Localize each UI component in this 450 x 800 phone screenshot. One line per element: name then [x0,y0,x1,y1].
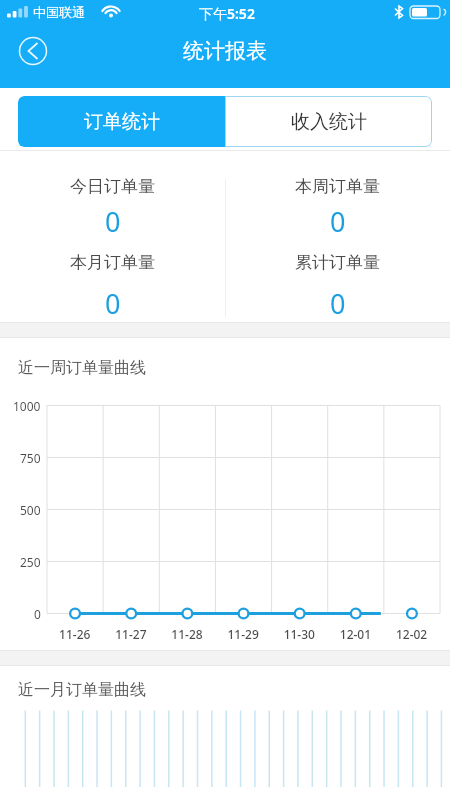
button[interactable]: 订单统计 [18,96,225,147]
button[interactable] [15,33,51,69]
staticText: 0 [330,285,346,322]
staticText: 近一月订单量曲线 [18,680,146,700]
staticText: 本周订单量 [295,176,380,197]
staticText: 累计订单量 [295,252,380,273]
staticText: 中国联通 [33,4,85,20]
button[interactable]: 收入统计 [225,96,432,147]
staticText: 本月订单量 [70,252,155,273]
button[interactable]: 今日订单量 [0,151,225,236]
staticText: 0 [105,285,121,322]
staticText: 下午5:52 [199,4,255,23]
button[interactable]: 累计订单量 [225,236,450,322]
staticText: 近一周订单量曲线 [18,358,146,378]
button[interactable]: 本周订单量 [225,151,450,236]
staticText: 今日订单量 [70,176,155,197]
staticText: 收入统计 [291,110,367,134]
staticText: 统计报表 [183,38,267,64]
staticText: 0 [105,203,121,236]
staticText: 0 [330,203,346,236]
staticText: 订单统计 [84,110,160,134]
button[interactable]: 本月订单量 [0,236,225,322]
